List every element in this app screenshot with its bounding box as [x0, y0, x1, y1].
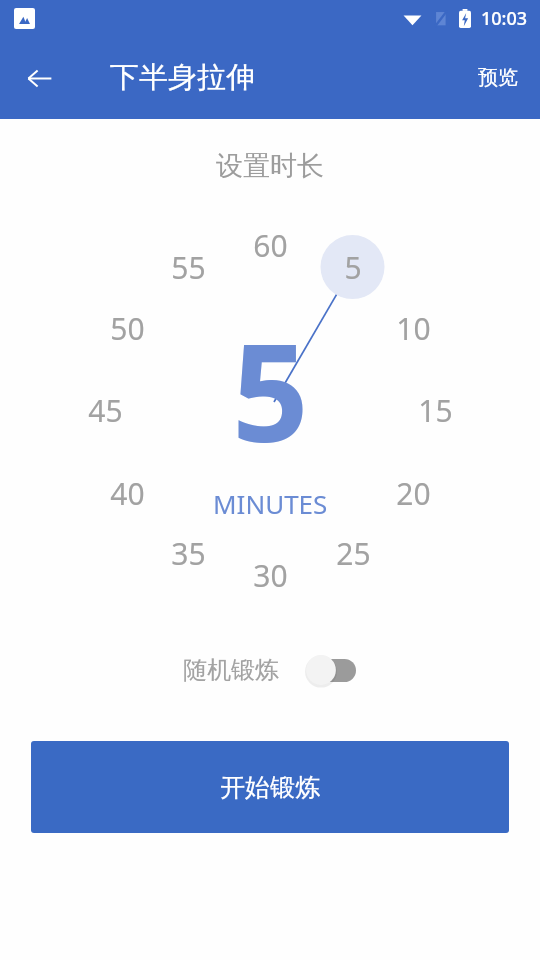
button[interactable]: 45: [79, 384, 131, 436]
button[interactable]: 25: [327, 527, 379, 579]
button[interactable]: Back: [13, 52, 65, 104]
button[interactable]: 35: [162, 527, 214, 579]
button[interactable]: 20: [387, 467, 439, 519]
button[interactable]: 55: [162, 241, 214, 293]
staticText: 15: [418, 390, 453, 431]
staticText: 下半身拉伸: [110, 59, 255, 96]
button[interactable]: 10: [387, 302, 439, 354]
staticText: 20: [396, 473, 431, 514]
staticText: 5: [232, 299, 309, 482]
button[interactable]: 60: [244, 219, 296, 271]
button[interactable]: 15: [409, 384, 461, 436]
button[interactable]: 5: [327, 241, 379, 293]
staticText: 55: [171, 247, 206, 288]
button[interactable]: 40: [101, 467, 153, 519]
button[interactable]: 随机锻炼: [0, 653, 540, 687]
button[interactable]: 30: [244, 549, 296, 601]
staticText: 5: [344, 247, 362, 288]
button[interactable]: 开始锻炼: [31, 741, 509, 833]
staticText: 45: [88, 390, 123, 431]
staticText: 40: [110, 473, 145, 514]
staticText: 35: [171, 533, 206, 574]
staticText: MINUTES: [213, 486, 328, 521]
staticText: 预览: [478, 65, 518, 90]
button[interactable]: 50: [101, 302, 153, 354]
staticText: 随机锻炼: [183, 655, 279, 685]
button[interactable]: 预览: [462, 53, 534, 102]
staticText: 10: [396, 308, 431, 349]
staticText: 25: [336, 533, 371, 574]
staticText: 开始锻炼: [220, 772, 320, 803]
staticText: 设置时长: [0, 149, 540, 183]
staticText: 30: [253, 555, 288, 596]
staticText: 10:03: [481, 6, 528, 31]
staticText: 60: [253, 225, 288, 266]
staticText: 50: [110, 308, 145, 349]
